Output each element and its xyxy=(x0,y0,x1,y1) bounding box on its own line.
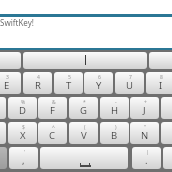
staticText: 6 xyxy=(98,74,101,81)
button[interactable]: Symbols xyxy=(0,147,7,169)
button[interactable]: ) xyxy=(100,122,129,144)
button[interactable]: ( xyxy=(69,122,98,144)
button[interactable]: 3 xyxy=(0,72,21,94)
staticText: Y xyxy=(96,79,102,92)
button[interactable]: & xyxy=(38,97,67,119)
staticText: G xyxy=(80,104,87,117)
staticText: $ xyxy=(22,124,25,131)
staticText: 5 xyxy=(68,74,71,81)
staticText: . xyxy=(145,154,148,167)
button[interactable]: $ xyxy=(8,122,37,144)
staticText: 7 xyxy=(129,74,132,81)
button[interactable]: Space xyxy=(40,147,128,169)
staticText: T xyxy=(66,79,72,92)
staticText: N xyxy=(141,129,149,142)
button[interactable]: 5 xyxy=(54,72,83,94)
staticText: R xyxy=(35,79,41,92)
staticText: + xyxy=(144,99,147,106)
staticText: F xyxy=(50,104,55,117)
staticText: D xyxy=(19,104,26,117)
staticText: & xyxy=(52,99,56,106)
button[interactable]: % xyxy=(8,97,37,119)
staticText: , xyxy=(22,154,25,167)
staticText: * xyxy=(83,99,86,106)
button[interactable]: 4 xyxy=(23,72,52,94)
button[interactable]: Enter xyxy=(163,147,172,169)
button[interactable]: Previous suggestions xyxy=(0,52,21,69)
staticText: H xyxy=(111,104,119,117)
button[interactable]: ^ xyxy=(38,122,67,144)
button[interactable]: 7 xyxy=(115,72,144,94)
button[interactable] xyxy=(0,97,6,119)
staticText: " xyxy=(144,124,147,131)
button[interactable]: - xyxy=(100,97,129,119)
staticText: 4 xyxy=(37,74,40,81)
button[interactable] xyxy=(161,122,172,144)
staticText: ) xyxy=(115,124,117,131)
button[interactable]: 6 xyxy=(84,72,113,94)
button[interactable]: " xyxy=(130,122,159,144)
button[interactable] xyxy=(161,97,172,119)
button[interactable]: 8 xyxy=(146,72,172,94)
staticText: V xyxy=(81,129,87,142)
staticText: B xyxy=(111,129,118,142)
button[interactable] xyxy=(0,122,6,144)
staticText: 3 xyxy=(6,74,9,81)
staticText: % xyxy=(21,99,26,106)
button[interactable]: ' xyxy=(9,147,38,169)
staticText: X xyxy=(20,129,26,142)
button[interactable]: SwiftKey! xyxy=(0,17,34,28)
staticText: ' xyxy=(24,149,26,156)
button[interactable]: | xyxy=(132,147,161,169)
staticText: E xyxy=(4,79,10,92)
staticText: J xyxy=(143,104,146,117)
staticText: C xyxy=(49,129,56,142)
button[interactable]: + xyxy=(130,97,159,119)
staticText: | xyxy=(146,149,149,156)
staticText: - xyxy=(115,99,117,106)
staticText: I xyxy=(159,79,163,92)
staticText: U xyxy=(126,79,133,92)
button[interactable]: More suggestions xyxy=(149,52,172,69)
staticText: ^ xyxy=(52,124,55,131)
button[interactable] xyxy=(23,52,147,69)
staticText: 8 xyxy=(160,74,163,81)
staticText: ( xyxy=(84,124,86,131)
button[interactable]: * xyxy=(69,97,98,119)
